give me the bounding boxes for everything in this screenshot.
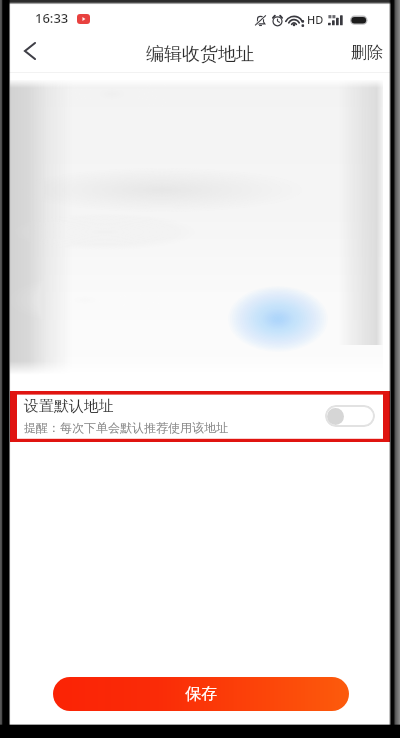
staticText: 提醒：每次下单会默认推荐使用该地址 — [24, 420, 228, 435]
button[interactable]: 删除 — [342, 34, 392, 72]
staticText: 删除 — [351, 43, 383, 63]
staticText: HD — [307, 12, 324, 27]
staticText: 设置默认地址 — [24, 397, 114, 416]
button[interactable]: Back — [10, 32, 50, 72]
staticText: 16:33 — [35, 9, 69, 27]
staticText: 编辑收货地址 — [146, 43, 254, 66]
button[interactable]: 保存 — [53, 677, 349, 711]
button[interactable]: 设置默认地址 — [10, 391, 390, 442]
staticText: 保存 — [185, 684, 217, 704]
button[interactable]: Set as default address toggle — [325, 405, 375, 427]
